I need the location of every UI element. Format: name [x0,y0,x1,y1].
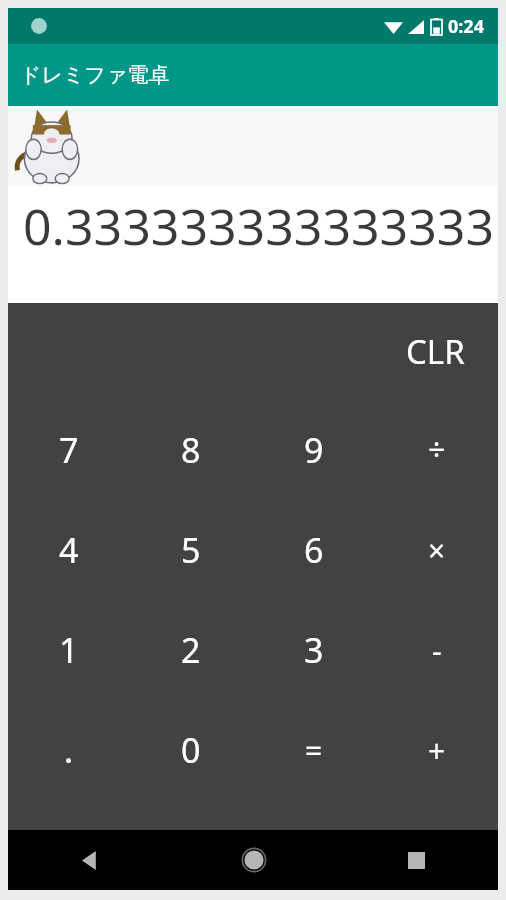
staticText: 0:24 [448,14,484,39]
button[interactable]: 3 [252,600,375,700]
staticText: - [432,630,442,671]
button[interactable]: = [252,700,375,800]
button[interactable]: 1 [8,600,130,700]
staticText: . [64,727,74,773]
button[interactable]: CLR [372,303,498,399]
button[interactable]: 6 [252,500,375,600]
button[interactable]: ÷ [375,399,498,500]
staticText: 2 [181,627,201,673]
staticText: ÷ [428,429,446,470]
button[interactable]: Recent apps [335,830,498,890]
button[interactable]: 8 [130,399,252,500]
staticText: 7 [59,427,79,473]
button[interactable]: 7 [8,399,130,500]
button[interactable]: 5 [130,500,252,600]
staticText: 4 [59,527,79,573]
staticText: × [428,530,446,571]
button[interactable]: - [375,600,498,700]
staticText: ドレミファ電卓 [20,62,170,88]
staticText: CLR [406,329,465,374]
button[interactable]: + [375,700,498,800]
staticText: 8 [181,427,201,473]
button[interactable]: 9 [252,399,375,500]
staticText: 9 [304,427,324,473]
button[interactable]: . [8,700,130,800]
button[interactable]: Back [8,830,172,890]
staticText: 0 [181,727,201,773]
button[interactable]: 4 [8,500,130,600]
staticText: 1 [59,627,79,673]
staticText: 5 [181,527,201,573]
button[interactable]: 2 [130,600,252,700]
button[interactable]: × [375,500,498,600]
staticText: = [305,730,323,771]
staticText: 3 [304,627,324,673]
button[interactable]: 0 [130,700,252,800]
staticText: 0.333333333333333 [23,192,494,260]
button[interactable]: Home [172,830,335,890]
staticText: 6 [304,527,324,573]
staticText: + [428,730,446,771]
